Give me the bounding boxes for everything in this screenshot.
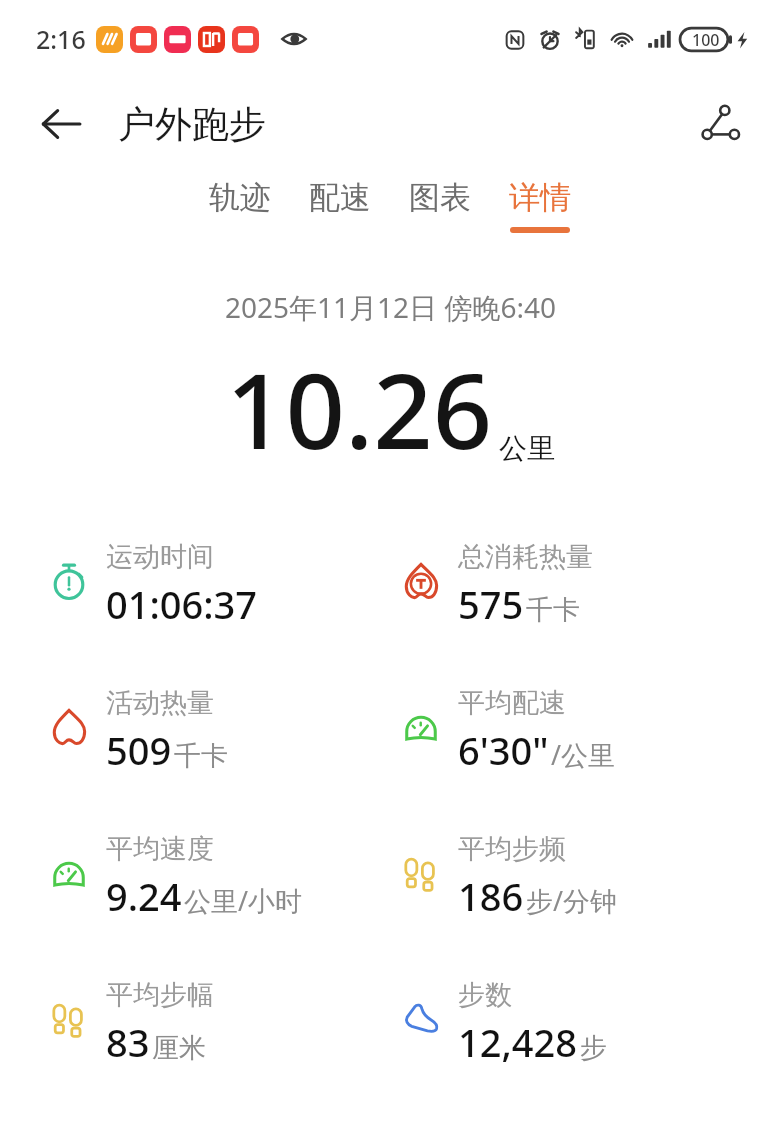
staticText: 图表: [409, 178, 471, 217]
staticText: 配速: [309, 178, 371, 217]
staticText: 总消耗热量: [458, 540, 593, 574]
staticText: 2025年11月12日 傍晚6:40: [225, 288, 556, 326]
button[interactable]: 轨迹: [190, 170, 290, 254]
staticText: 步数: [458, 978, 512, 1012]
staticText: 10.26: [226, 338, 493, 480]
staticText: /公里: [551, 736, 616, 773]
staticText: 6'30": [458, 724, 549, 776]
staticText: 01:06:37: [106, 578, 258, 630]
staticText: 千卡: [174, 739, 228, 773]
button[interactable]: Share: [692, 96, 748, 152]
staticText: 活动热量: [106, 686, 214, 720]
staticText: 步/分钟: [526, 882, 618, 919]
staticText: 平均步幅: [106, 978, 214, 1012]
staticText: 详情: [509, 178, 571, 217]
button[interactable]: 图表: [390, 170, 490, 254]
button[interactable]: 步数: [390, 974, 780, 1120]
staticText: 509: [106, 724, 172, 776]
button[interactable]: 活动热量: [0, 682, 390, 828]
staticText: 步: [580, 1031, 607, 1065]
staticText: 2:16: [36, 22, 86, 56]
staticText: 公里: [499, 431, 555, 466]
staticText: 平均配速: [458, 686, 566, 720]
staticText: 轨迹: [209, 178, 271, 217]
staticText: 公里/小时: [184, 882, 303, 919]
staticText: 户外跑步: [118, 101, 266, 148]
button[interactable]: 配速: [290, 170, 390, 254]
staticText: 186: [458, 870, 524, 922]
staticText: 9.24: [106, 870, 182, 922]
staticText: 100: [692, 29, 720, 51]
staticText: 平均步频: [458, 832, 566, 866]
button[interactable]: 平均速度: [0, 828, 390, 974]
staticText: 12,428: [458, 1016, 578, 1068]
staticText: 平均速度: [106, 832, 214, 866]
staticText: 575: [458, 578, 524, 630]
staticText: 厘米: [152, 1031, 206, 1065]
button[interactable]: 平均步幅: [0, 974, 390, 1120]
button[interactable]: 平均步频: [390, 828, 780, 974]
button[interactable]: 运动时间: [0, 536, 390, 682]
staticText: 运动时间: [106, 540, 214, 574]
button[interactable]: 总消耗热量: [390, 536, 780, 682]
button[interactable]: 平均配速: [390, 682, 780, 828]
staticText: 千卡: [526, 593, 580, 627]
button[interactable]: Back: [34, 97, 88, 151]
button[interactable]: 详情: [490, 170, 590, 254]
staticText: 83: [106, 1016, 150, 1068]
